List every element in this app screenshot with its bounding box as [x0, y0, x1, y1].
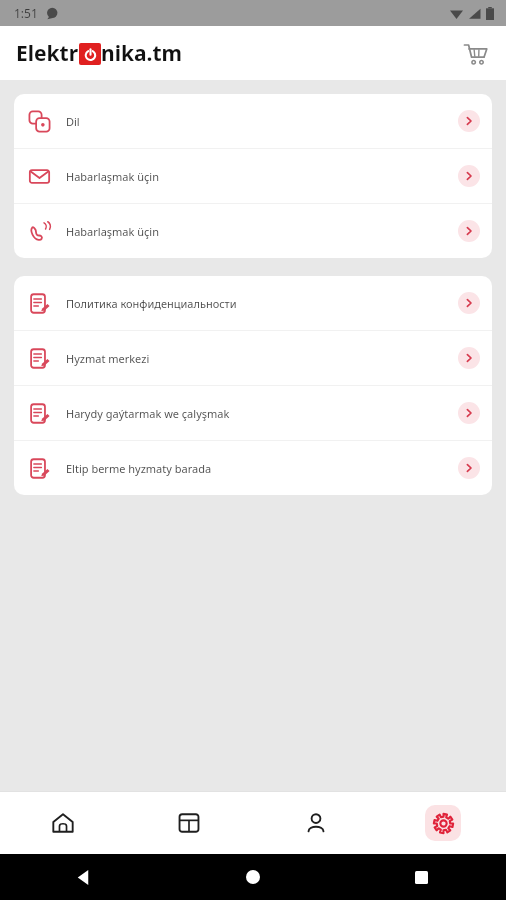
staticText: Eltip berme hyzmaty barada	[66, 461, 458, 476]
button[interactable]: Settings	[379, 792, 506, 854]
button[interactable]: Habarlaşmak üçin	[14, 204, 492, 258]
button[interactable]: Dil	[14, 94, 492, 148]
button[interactable]: Cart	[454, 32, 496, 74]
button[interactable]: Hyzmat merkezi	[14, 331, 492, 385]
button[interactable]: Profile	[252, 792, 379, 854]
staticText: 1:51	[14, 5, 38, 21]
staticText: nika.tm	[101, 39, 183, 68]
staticText: Habarlaşmak üçin	[66, 169, 458, 184]
staticText: Elektr	[16, 39, 79, 68]
button[interactable]: Harydy gaýtarmak we çalyşmak	[14, 386, 492, 440]
staticText: Habarlaşmak üçin	[66, 224, 458, 239]
staticText: Harydy gaýtarmak we çalyşmak	[66, 406, 458, 421]
staticText: Политика конфиденциальности	[66, 296, 458, 311]
button[interactable]: Habarlaşmak üçin	[14, 149, 492, 203]
button[interactable]: Политика конфиденциальности	[14, 276, 492, 330]
staticText: Hyzmat merkezi	[66, 351, 458, 366]
button[interactable]: Catalog	[126, 792, 252, 854]
button[interactable]: Home	[0, 792, 126, 854]
button[interactable]: Eltip berme hyzmaty barada	[14, 441, 492, 495]
staticText: Dil	[66, 114, 458, 129]
